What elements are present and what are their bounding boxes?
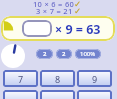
button[interactable] [22, 20, 52, 37]
staticText: ✓ [74, 0, 82, 9]
button[interactable]: 7 [3, 70, 38, 87]
staticText: × 9 = 63 [55, 21, 101, 38]
button[interactable] [77, 90, 112, 99]
button[interactable]: 100% [75, 49, 101, 59]
button[interactable]: 2 [36, 49, 53, 59]
staticText: 10 × 6 = 60 [33, 0, 75, 9]
button[interactable] [3, 90, 38, 99]
button[interactable]: 9 [77, 70, 112, 87]
staticText: 7 [18, 73, 24, 85]
button[interactable]: 8 [40, 70, 75, 87]
button[interactable]: 2 [56, 49, 72, 59]
staticText: ✓ [74, 6, 82, 16]
staticText: 3 × 7 = 21 [36, 6, 73, 16]
staticText: 100% [80, 50, 96, 58]
button[interactable] [40, 90, 75, 99]
staticText: 8 [55, 73, 61, 85]
staticText: 2 [62, 50, 66, 58]
staticText: 2 [43, 50, 47, 58]
staticText: 9 [92, 73, 98, 85]
